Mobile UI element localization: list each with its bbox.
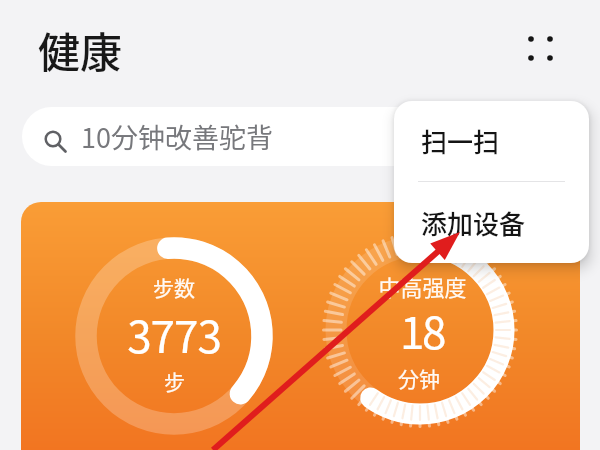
staticText: 添加设备	[421, 204, 526, 242]
staticText: 健康	[38, 19, 123, 80]
button[interactable]: 10分钟改善驼背	[22, 107, 578, 166]
button[interactable]: 添加设备	[394, 182, 589, 263]
staticText: 步数	[153, 272, 195, 302]
button[interactable]	[517, 25, 564, 72]
staticText: 3773	[127, 302, 221, 366]
button[interactable]: 扫一扫	[394, 101, 589, 181]
button[interactable]: 步数	[21, 202, 580, 450]
staticText: 步	[164, 366, 185, 396]
staticText: 18	[400, 298, 444, 362]
staticText: 扫一扫	[421, 122, 500, 160]
staticText: 中高强度	[378, 270, 467, 302]
staticText: 10分钟改善驼背	[81, 117, 273, 156]
staticText: 分钟	[398, 363, 440, 393]
